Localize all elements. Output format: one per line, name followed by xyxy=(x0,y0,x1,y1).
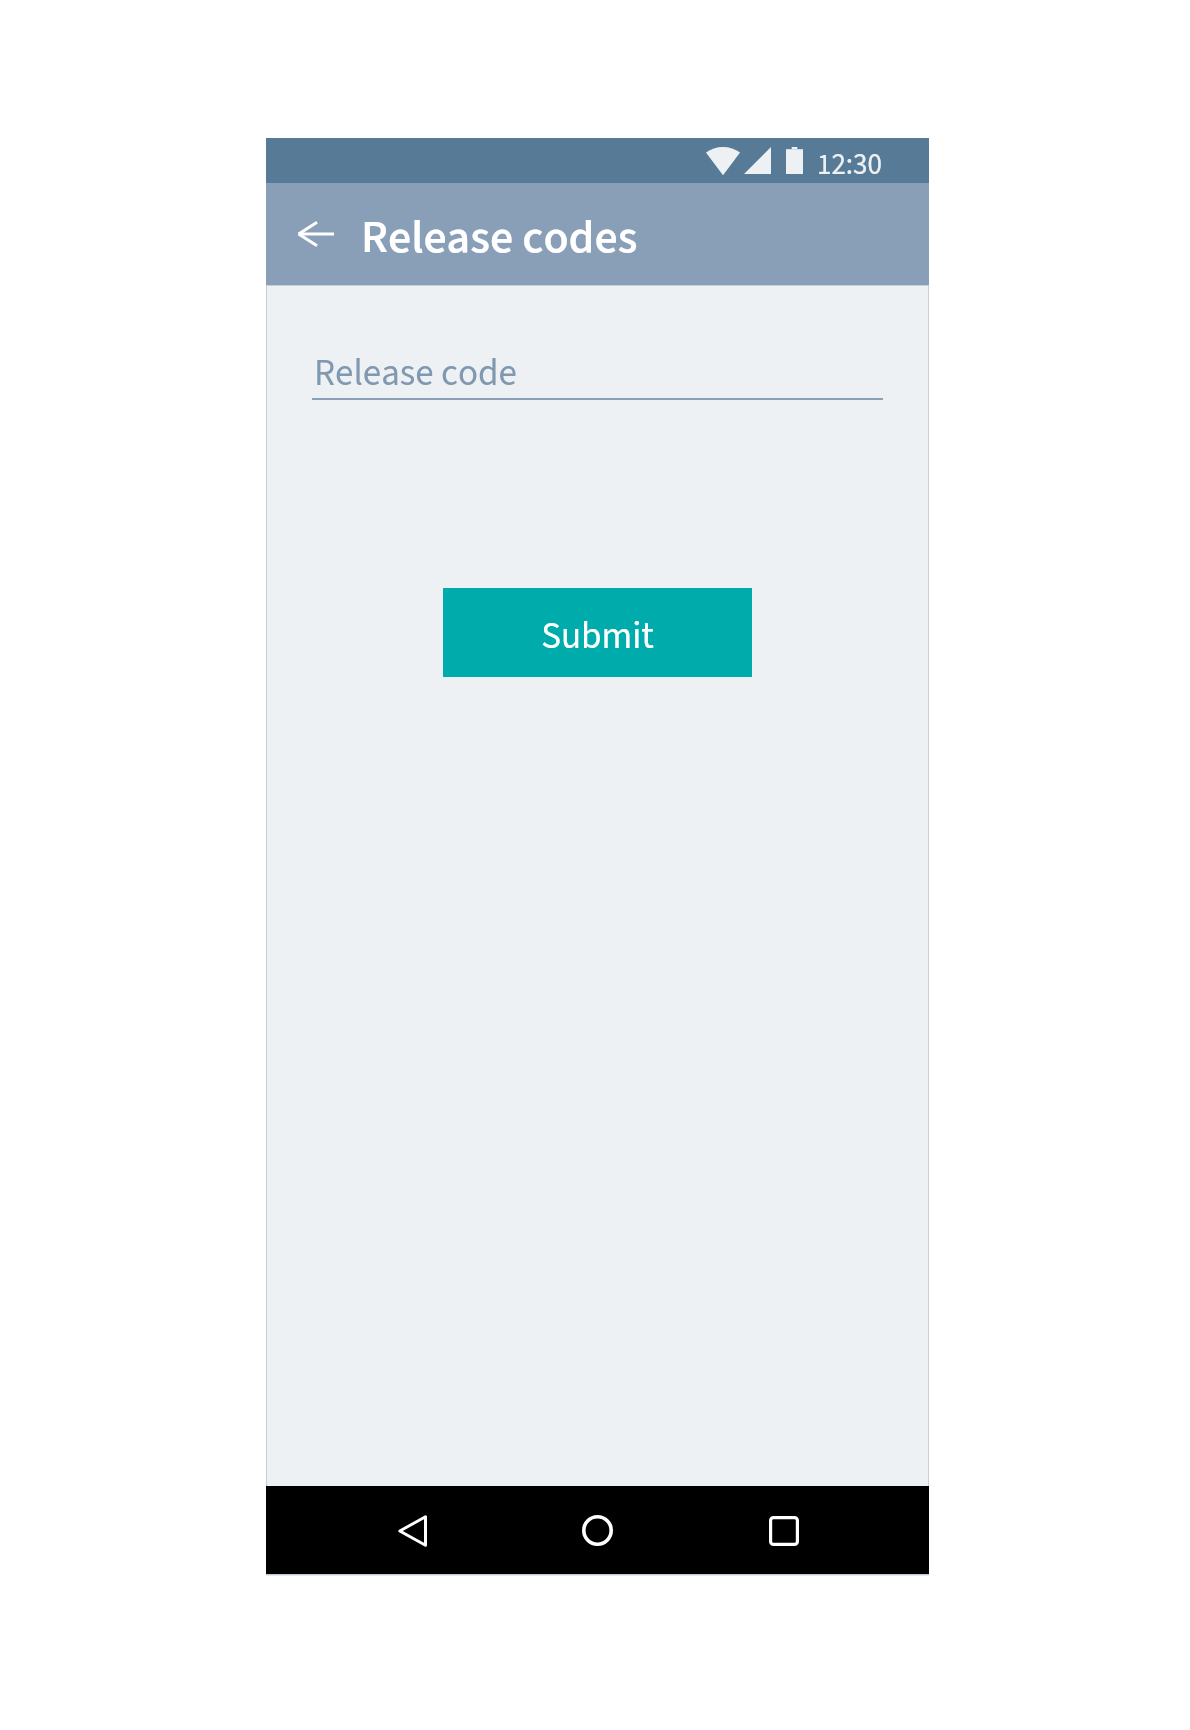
button[interactable]: Home xyxy=(561,1494,634,1567)
staticText: 12:30 xyxy=(817,144,882,185)
button[interactable]: Release code input field xyxy=(312,340,883,407)
staticText: Release code xyxy=(314,347,517,400)
button[interactable]: Navigate up xyxy=(276,208,354,260)
button[interactable]: Recent apps xyxy=(747,1494,820,1567)
button[interactable]: Submit xyxy=(443,588,752,677)
button[interactable]: Back xyxy=(376,1494,449,1567)
staticText: Submit xyxy=(541,610,654,663)
staticText: Release codes xyxy=(361,205,638,271)
